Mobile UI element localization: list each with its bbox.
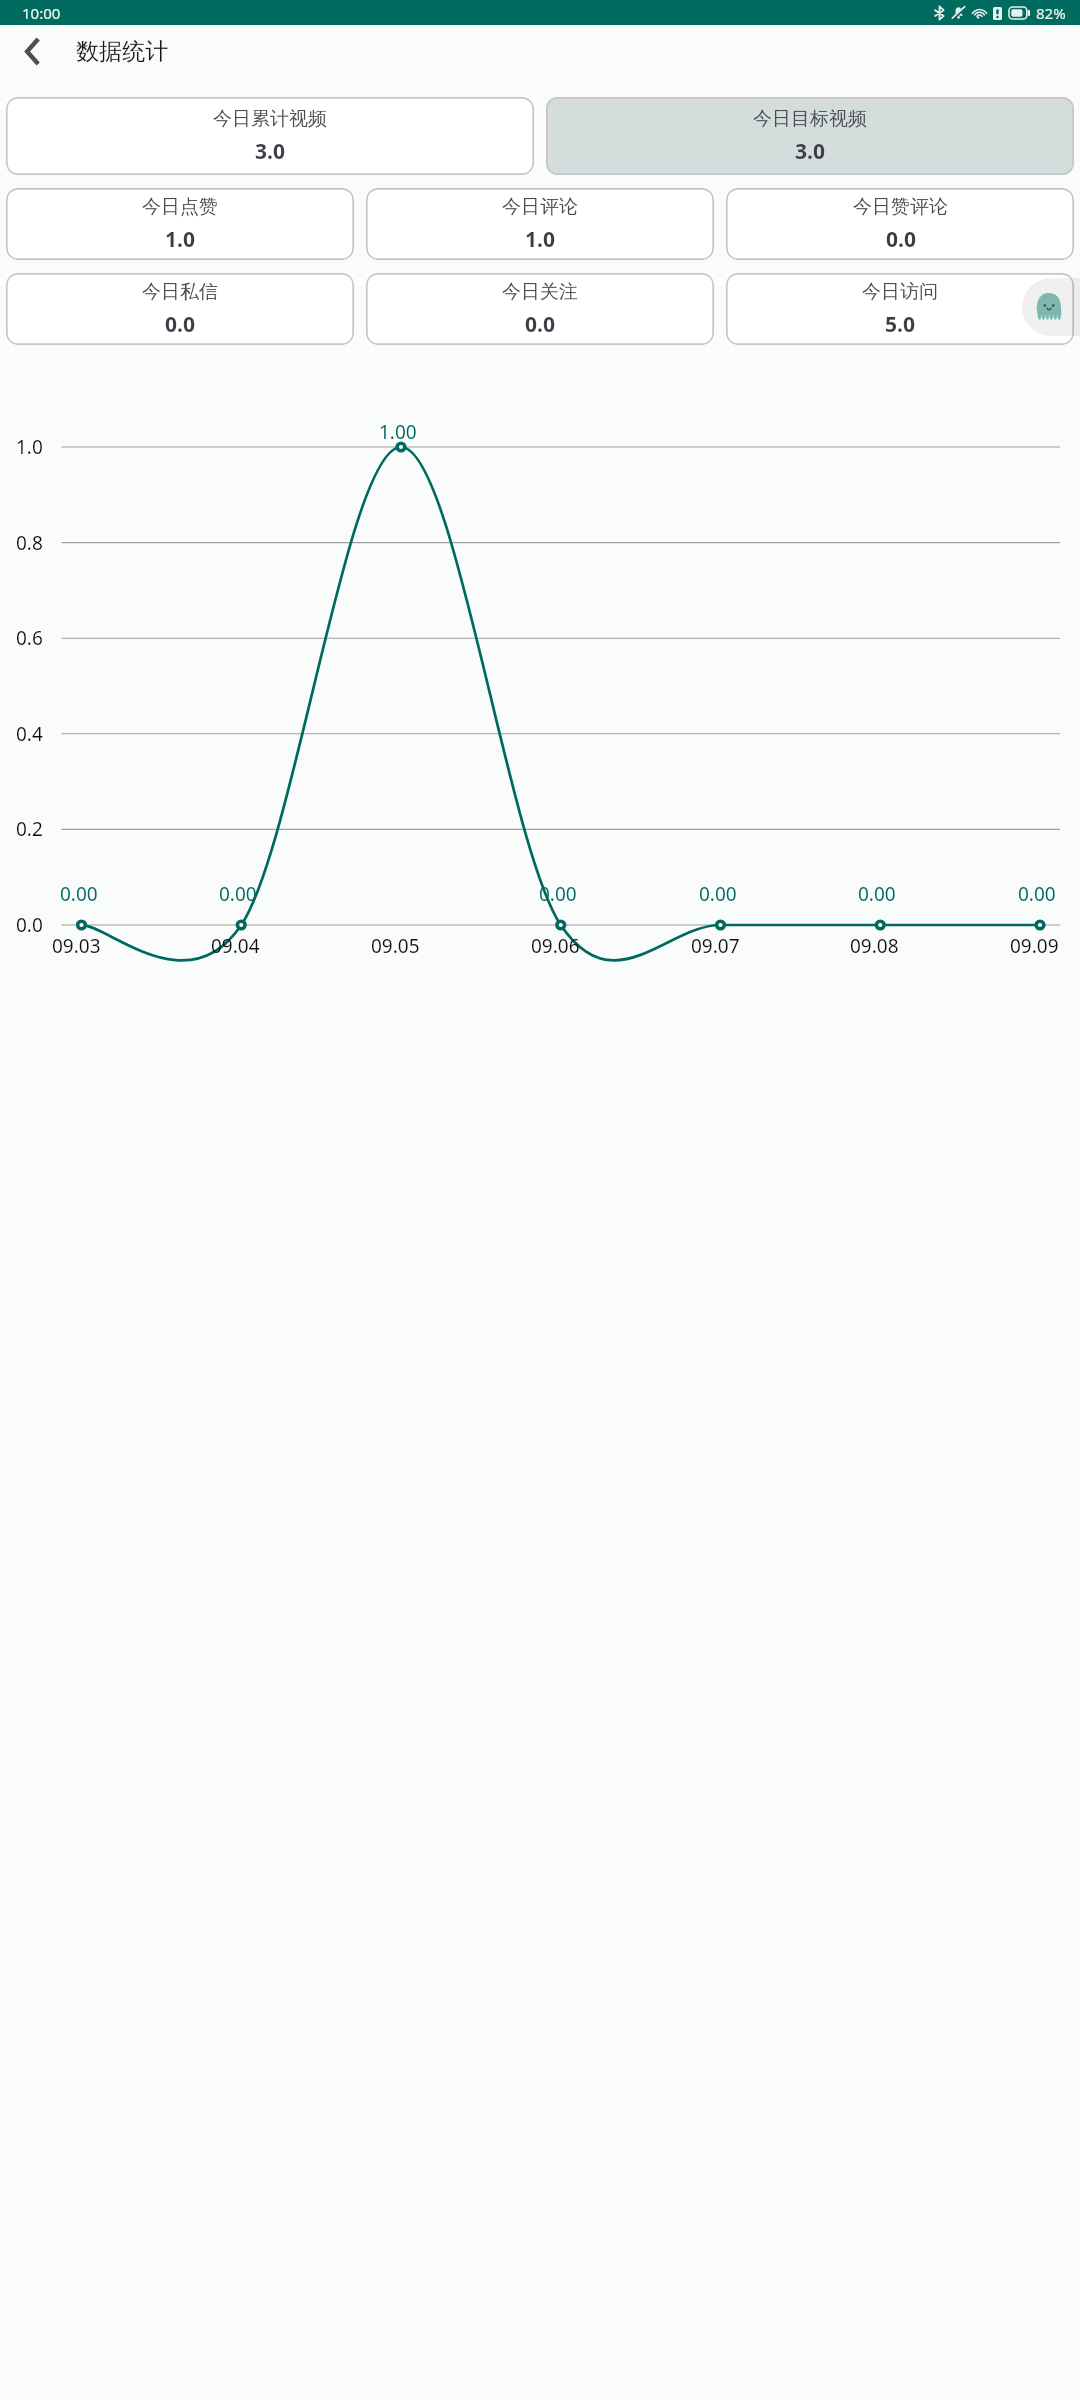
staticText: 0.00 bbox=[539, 881, 577, 907]
staticText: 数据统计 bbox=[76, 37, 168, 66]
staticText: 1.0 bbox=[16, 434, 43, 460]
staticText: 09.06 bbox=[531, 933, 580, 959]
staticText: 82% bbox=[1036, 3, 1066, 23]
staticText: 0.6 bbox=[16, 625, 43, 651]
staticText: 0.00 bbox=[219, 881, 257, 907]
staticText: 10:00 bbox=[22, 3, 61, 23]
staticText: 今日评论 bbox=[502, 195, 578, 219]
staticText: 09.05 bbox=[371, 933, 420, 959]
staticText: 0.00 bbox=[858, 881, 896, 907]
staticText: 09.07 bbox=[691, 933, 740, 959]
button[interactable]: 今日评论 bbox=[366, 188, 714, 260]
staticText: 09.03 bbox=[52, 933, 101, 959]
staticText: 0.2 bbox=[16, 816, 43, 842]
staticText: 1.00 bbox=[379, 419, 417, 445]
staticText: 0.00 bbox=[699, 881, 737, 907]
staticText: 0.0 bbox=[886, 225, 916, 254]
staticText: 0.0 bbox=[16, 912, 43, 938]
staticText: 今日赞评论 bbox=[853, 195, 948, 219]
button[interactable]: 今日访问 bbox=[726, 273, 1074, 345]
staticText: 今日关注 bbox=[502, 280, 578, 304]
staticText: 今日目标视频 bbox=[753, 107, 867, 131]
staticText: 0.8 bbox=[16, 530, 43, 556]
button[interactable]: 今日赞评论 bbox=[726, 188, 1074, 260]
button[interactable]: Assistant bbox=[1022, 278, 1080, 336]
staticText: 今日访问 bbox=[862, 280, 938, 304]
staticText: 3.0 bbox=[255, 137, 285, 166]
staticText: 今日点赞 bbox=[142, 195, 218, 219]
staticText: 0.00 bbox=[1018, 881, 1056, 907]
staticText: 今日累计视频 bbox=[213, 107, 327, 131]
staticText: 今日私信 bbox=[142, 280, 218, 304]
staticText: 09.04 bbox=[211, 933, 260, 959]
button[interactable]: 今日私信 bbox=[6, 273, 354, 345]
button[interactable]: 今日目标视频 bbox=[546, 97, 1074, 175]
staticText: 1.0 bbox=[165, 225, 195, 254]
staticText: 0.00 bbox=[60, 881, 98, 907]
button[interactable]: Back bbox=[13, 32, 51, 70]
staticText: 0.0 bbox=[525, 310, 555, 339]
button[interactable]: 今日点赞 bbox=[6, 188, 354, 260]
staticText: 09.08 bbox=[850, 933, 899, 959]
staticText: 5.0 bbox=[885, 310, 915, 339]
button[interactable]: 今日关注 bbox=[366, 273, 714, 345]
staticText: 09.09 bbox=[1010, 933, 1059, 959]
staticText: 1.0 bbox=[525, 225, 555, 254]
button[interactable]: 今日累计视频 bbox=[6, 97, 534, 175]
staticText: 3.0 bbox=[795, 137, 825, 166]
staticText: 0.4 bbox=[16, 721, 43, 747]
staticText: 0.0 bbox=[165, 310, 195, 339]
